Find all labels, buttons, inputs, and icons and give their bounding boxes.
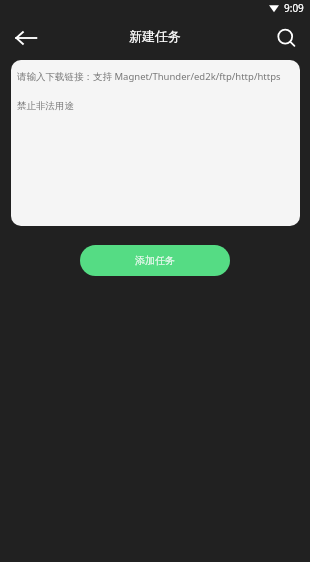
staticText: 新建任务 [129, 28, 181, 44]
button[interactable]: Back [6, 18, 46, 58]
staticText: 禁止非法用途 [17, 100, 74, 112]
staticText: 添加任务 [135, 254, 175, 267]
button[interactable]: 请输入下载链接：支持 Magnet/Thunder/ed2k/ftp/http/… [11, 60, 300, 226]
staticText: 请输入下载链接：支持 Magnet/Thunder/ed2k/ftp/http/… [17, 70, 281, 83]
staticText: 9:09 [284, 1, 304, 15]
button[interactable]: Search [266, 18, 306, 58]
button[interactable]: 添加任务 [80, 245, 230, 276]
